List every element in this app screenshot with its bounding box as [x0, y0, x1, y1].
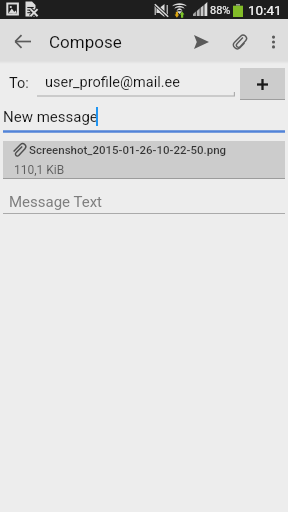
staticText: user_profile@mail.ee	[45, 74, 180, 91]
staticText: 88%	[210, 4, 231, 17]
staticText: 10:41	[248, 2, 282, 18]
staticText: To:	[9, 75, 29, 92]
staticText: Compose	[49, 32, 122, 52]
button[interactable]: user_profile@mail.ee	[37, 68, 235, 100]
button[interactable]: More options	[261, 19, 285, 64]
button[interactable]: Navigate up	[0, 19, 45, 64]
staticText: Message Text	[9, 193, 103, 211]
button[interactable]: Attach file	[227, 19, 251, 64]
staticText: New message	[3, 108, 98, 126]
staticText: 110,1 KiB	[14, 163, 65, 177]
button[interactable]: New message	[0, 99, 288, 133]
button[interactable]: Send	[189, 19, 225, 64]
button[interactable]: Screenshot_2015-01-26-10-22-50.png	[3, 141, 285, 179]
button[interactable]: Message Text	[0, 188, 288, 216]
button[interactable]: Add recipient	[240, 68, 285, 100]
staticText: Screenshot_2015-01-26-10-22-50.png	[29, 143, 227, 156]
